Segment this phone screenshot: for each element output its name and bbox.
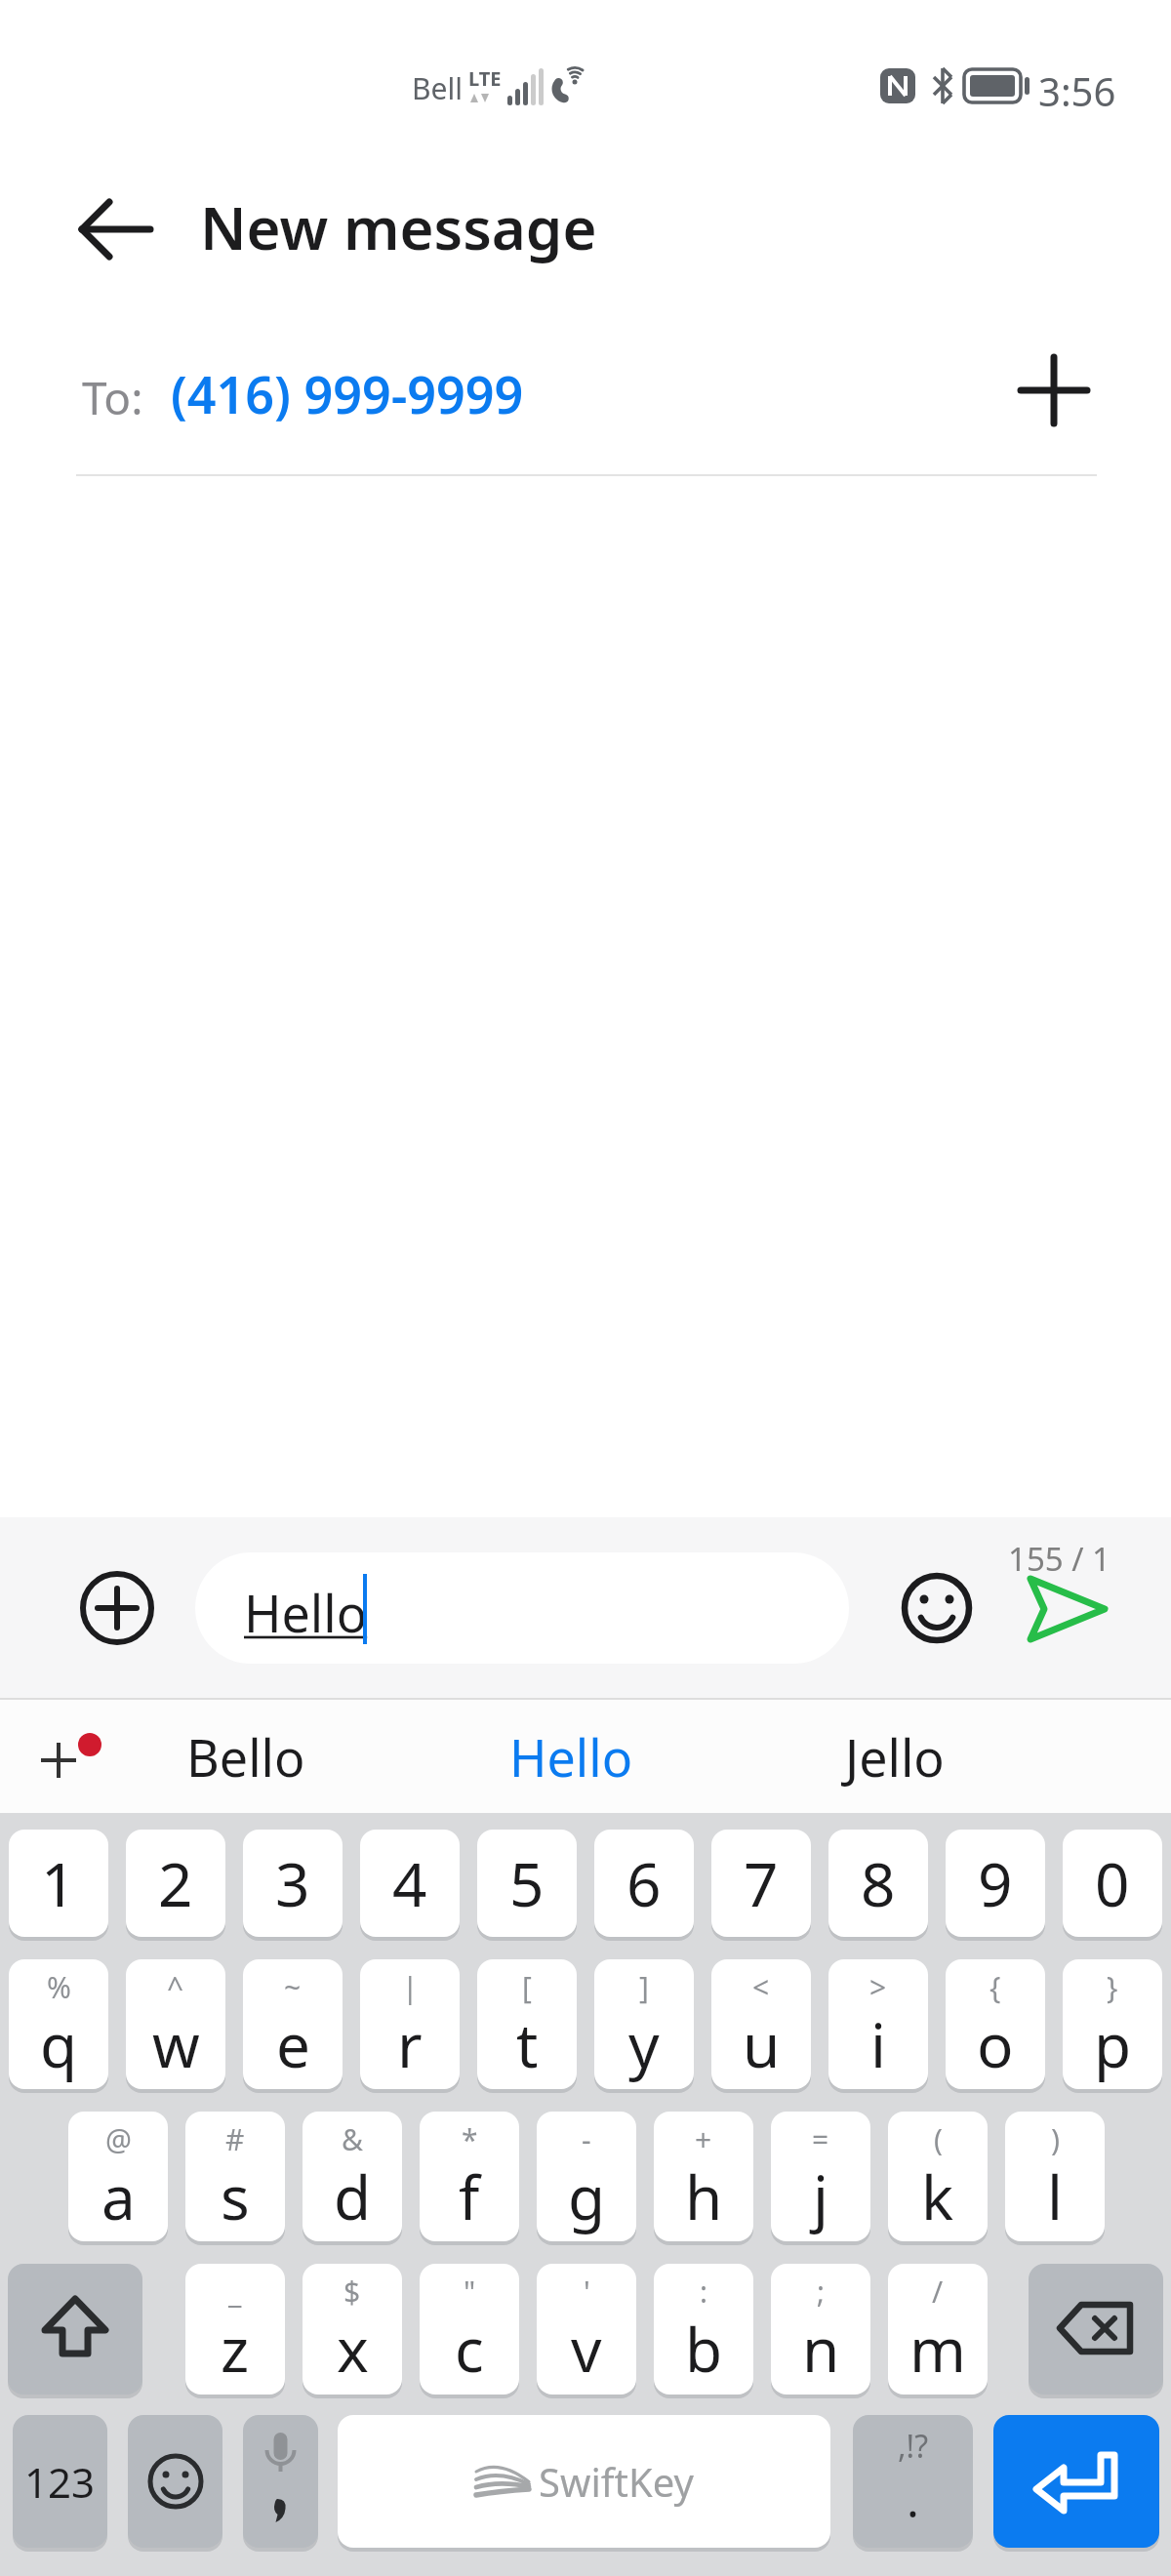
staticText: #: [225, 2119, 245, 2159]
staticText: l: [1047, 2155, 1063, 2237]
staticText: g: [568, 2155, 606, 2237]
button[interactable]: [896, 1567, 978, 1649]
staticText: @: [105, 2119, 132, 2159]
button[interactable]: @: [68, 2112, 168, 2241]
staticText: e: [276, 2003, 310, 2085]
button[interactable]: 4: [360, 1830, 460, 1937]
staticText: k: [921, 2155, 954, 2237]
staticText: (416) 999-9999: [171, 359, 524, 428]
button[interactable]: 123: [13, 2415, 107, 2548]
staticText: ;: [817, 2272, 826, 2312]
button[interactable]: (: [888, 2112, 988, 2241]
button[interactable]: [8, 2264, 142, 2395]
button[interactable]: [: [477, 1959, 577, 2089]
button[interactable]: -: [537, 2112, 636, 2241]
button[interactable]: 5: [477, 1830, 577, 1937]
staticText: f: [459, 2155, 480, 2237]
button[interactable]: [20, 1710, 127, 1803]
staticText: h: [685, 2155, 723, 2237]
button[interactable]: Jello: [781, 1700, 1009, 1813]
button[interactable]: To:: [0, 332, 1171, 478]
staticText: $: [343, 2272, 361, 2312]
staticText: &: [342, 2119, 363, 2159]
staticText: x: [337, 2308, 369, 2390]
button[interactable]: ;: [771, 2264, 870, 2395]
button[interactable]: 9: [946, 1830, 1045, 1937]
staticText: ,!?: [898, 2425, 929, 2468]
staticText: 7: [744, 1842, 779, 1924]
button[interactable]: [68, 185, 166, 273]
button[interactable]: #: [185, 2112, 285, 2241]
button[interactable]: [76, 1567, 158, 1649]
button[interactable]: |: [360, 1959, 460, 2089]
staticText: }: [1107, 1967, 1118, 2007]
button[interactable]: ,!?: [853, 2415, 973, 2548]
button[interactable]: 0: [1063, 1830, 1162, 1937]
button[interactable]: _: [185, 2264, 285, 2395]
staticText: j: [813, 2155, 828, 2237]
staticText: 3:56: [1038, 64, 1116, 117]
button[interactable]: +: [654, 2112, 753, 2241]
button[interactable]: [243, 2415, 318, 2548]
staticText: 0: [1095, 1842, 1130, 1924]
staticText: *: [462, 2119, 478, 2159]
staticText: 5: [509, 1842, 545, 1924]
button[interactable]: >: [828, 1959, 928, 2089]
staticText: n: [802, 2308, 840, 2390]
staticText: To:: [82, 367, 143, 428]
staticText: 4: [392, 1842, 427, 1924]
button[interactable]: <: [711, 1959, 811, 2089]
staticText: z: [221, 2308, 250, 2390]
button[interactable]: SwiftKey: [338, 2415, 830, 2548]
staticText: Bello: [186, 1722, 305, 1791]
button[interactable]: [1023, 1574, 1110, 1644]
button[interactable]: }: [1063, 1959, 1162, 2089]
button[interactable]: /: [888, 2264, 988, 2395]
button[interactable]: ": [420, 2264, 519, 2395]
staticText: r: [397, 2003, 423, 2085]
button[interactable]: Bello: [132, 1700, 360, 1813]
staticText: p: [1094, 2003, 1132, 2085]
button[interactable]: =: [771, 2112, 870, 2241]
button[interactable]: 7: [711, 1830, 811, 1937]
button[interactable]: :: [654, 2264, 753, 2395]
staticText: u: [743, 2003, 781, 2085]
button[interactable]: 3: [243, 1830, 343, 1937]
staticText: m: [909, 2308, 966, 2390]
button[interactable]: [1029, 2264, 1163, 2395]
button[interactable]: ': [537, 2264, 636, 2395]
staticText: >: [869, 1967, 887, 2007]
button[interactable]: 8: [828, 1830, 928, 1937]
button[interactable]: Hello: [195, 1552, 849, 1664]
staticText: 9: [978, 1842, 1013, 1924]
button[interactable]: 2: [126, 1830, 225, 1937]
button[interactable]: ~: [243, 1959, 343, 2089]
staticText: ): [1051, 2119, 1060, 2159]
staticText: o: [977, 2003, 1014, 2085]
staticText: d: [334, 2155, 372, 2237]
staticText: LTE: [468, 65, 502, 92]
button[interactable]: {: [946, 1959, 1045, 2089]
button[interactable]: ^: [126, 1959, 225, 2089]
button[interactable]: ): [1005, 2112, 1105, 2241]
staticText: New message: [200, 187, 597, 267]
button[interactable]: Hello: [457, 1700, 685, 1813]
staticText: s: [221, 2155, 250, 2237]
button[interactable]: %: [9, 1959, 108, 2089]
button[interactable]: *: [420, 2112, 519, 2241]
button[interactable]: 6: [594, 1830, 694, 1937]
staticText: Jello: [845, 1722, 945, 1791]
staticText: 2: [158, 1842, 193, 1924]
staticText: Hello: [244, 1578, 368, 1647]
button[interactable]: $: [303, 2264, 402, 2395]
staticText: t: [516, 2003, 539, 2085]
button[interactable]: ]: [594, 1959, 694, 2089]
staticText: |: [402, 1967, 419, 2007]
button[interactable]: &: [303, 2112, 402, 2241]
staticText: 1: [41, 1842, 76, 1924]
button[interactable]: [128, 2415, 222, 2548]
button[interactable]: 1: [9, 1830, 108, 1937]
staticText: y: [628, 2003, 660, 2085]
staticText: c: [455, 2308, 484, 2390]
button[interactable]: [993, 2415, 1159, 2548]
